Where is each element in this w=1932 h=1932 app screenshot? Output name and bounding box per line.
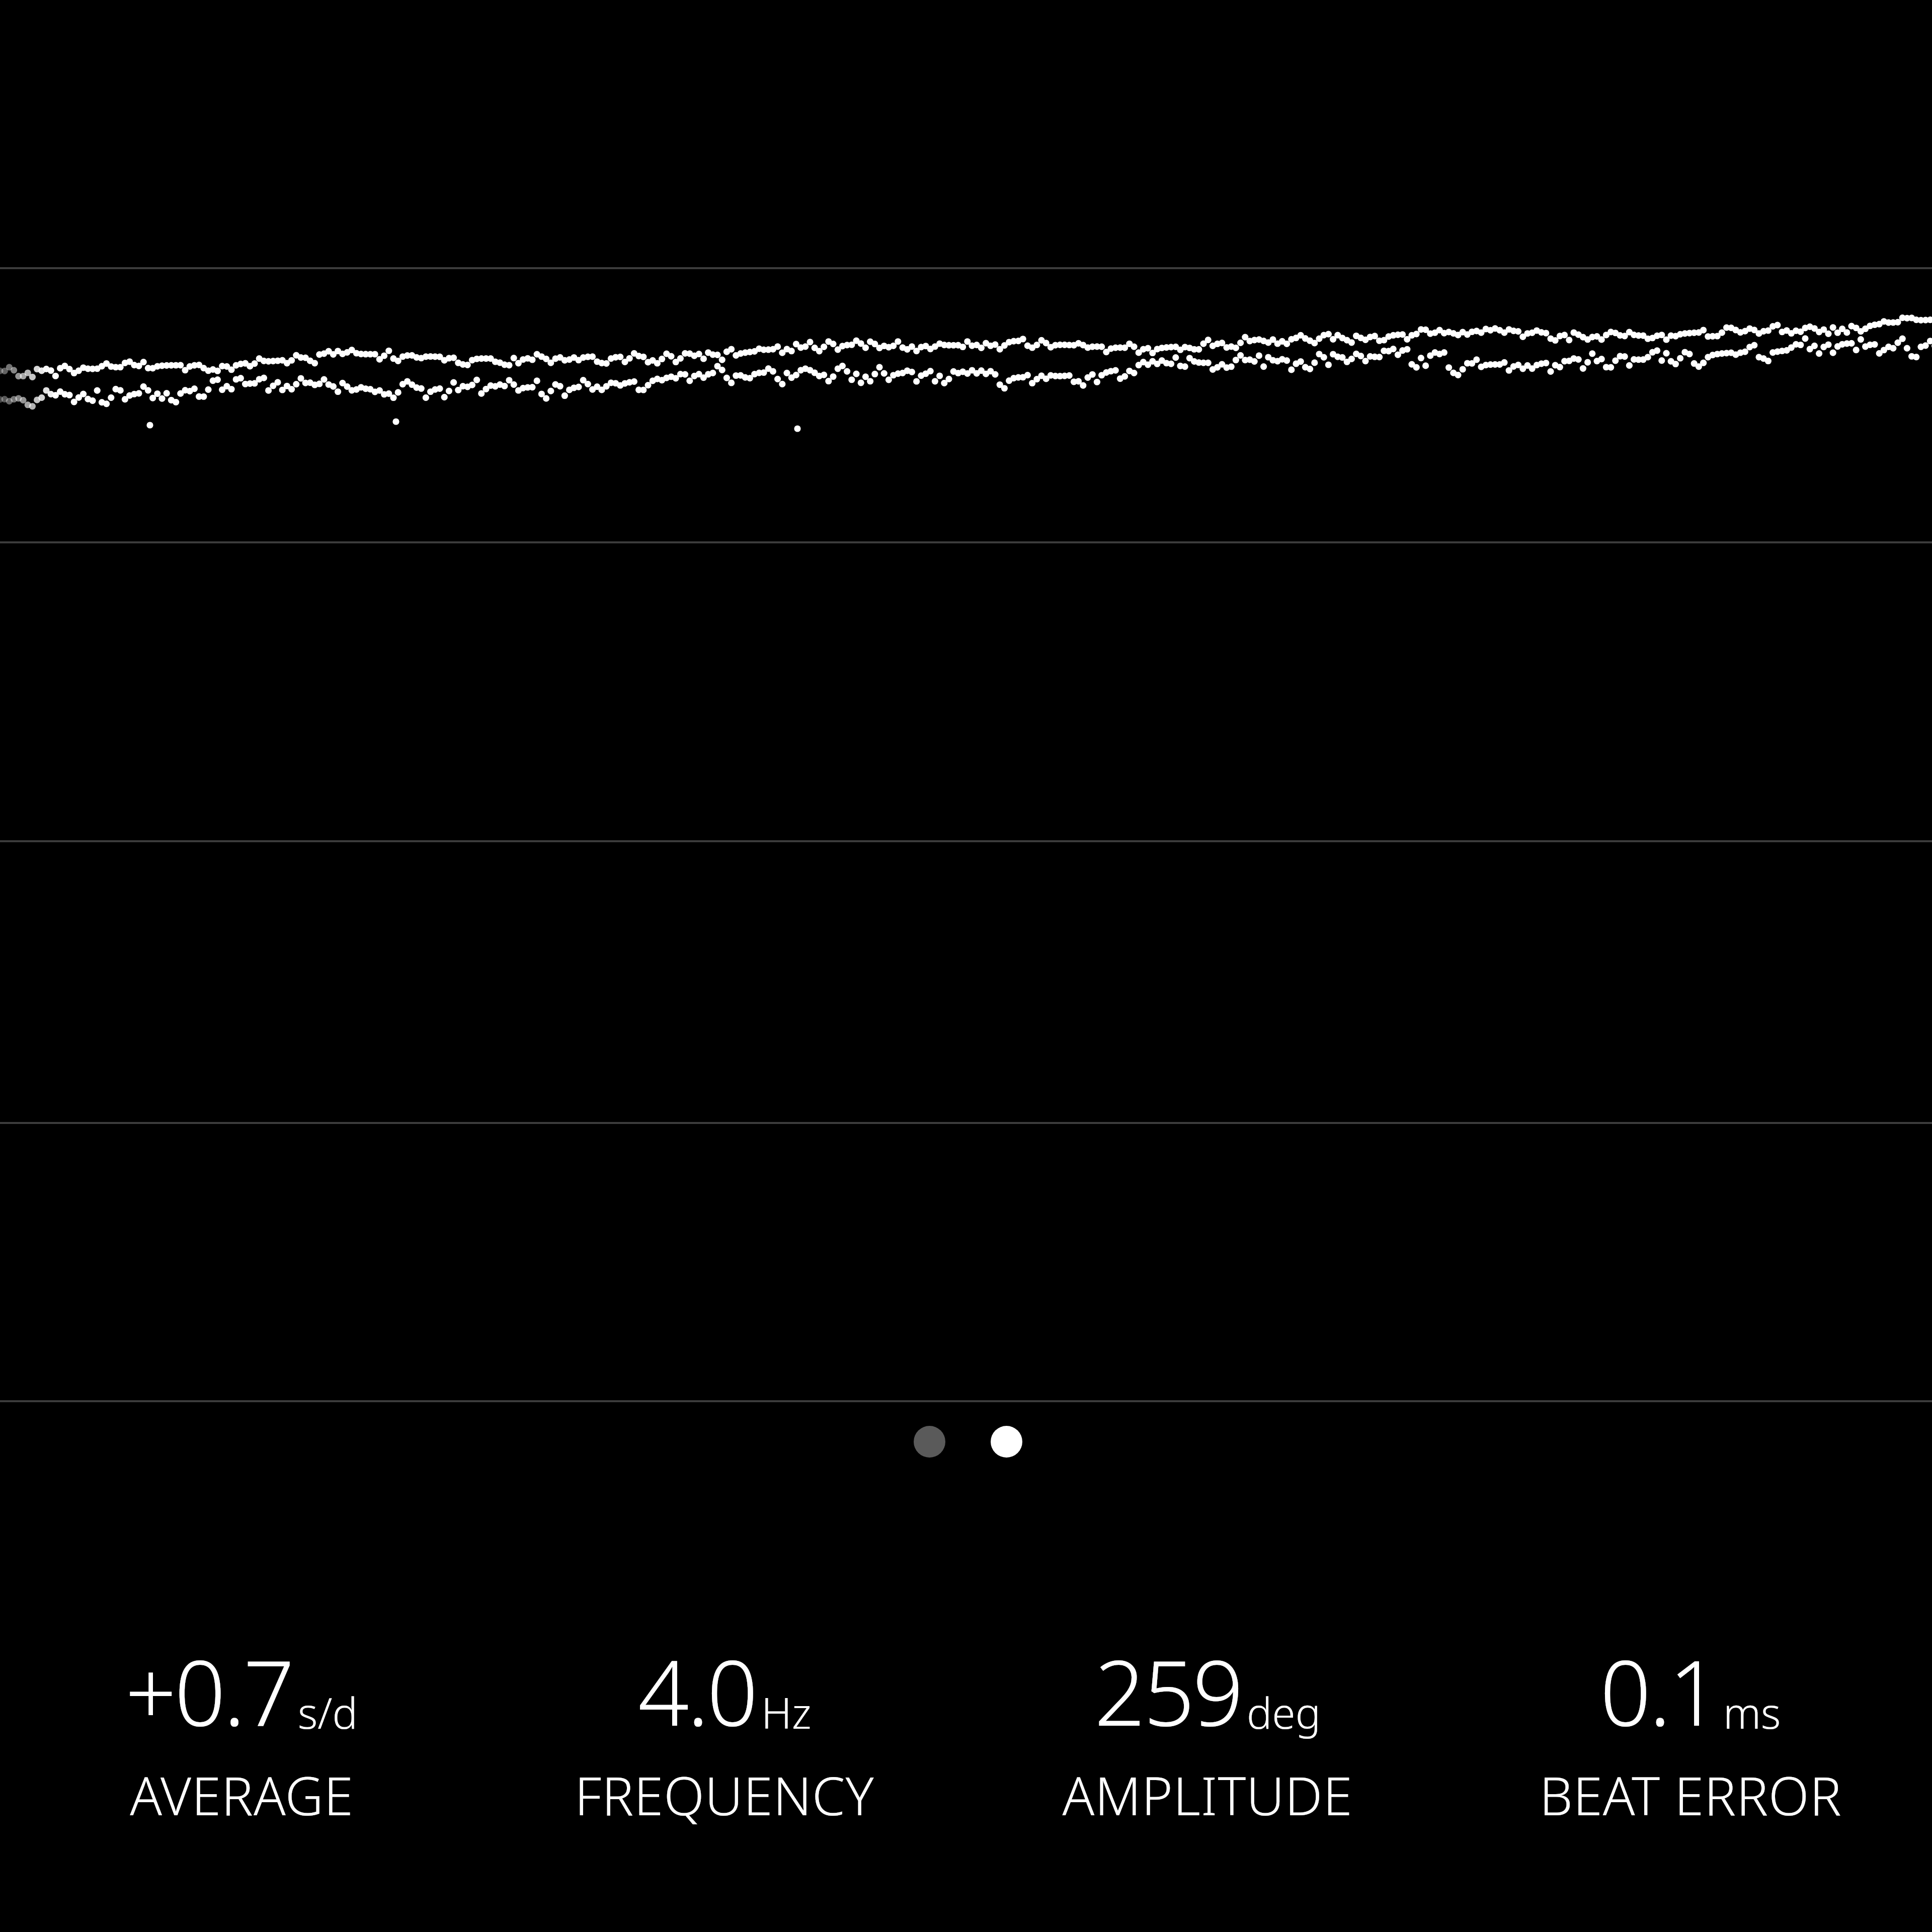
- staticText: deg: [1247, 1683, 1321, 1741]
- staticText: 259: [1094, 1630, 1242, 1752]
- staticText: FREQUENCY: [575, 1759, 874, 1831]
- other: Rate trace graph: [0, 0, 1932, 1404]
- button[interactable]: 0.1: [1449, 1630, 1932, 1831]
- staticText: ms: [1723, 1683, 1781, 1741]
- staticText: 0.1: [1600, 1630, 1718, 1752]
- staticText: 4.0: [638, 1630, 756, 1752]
- staticText: AMPLITUDE: [1062, 1759, 1353, 1831]
- button[interactable]: Page 1: [914, 1426, 945, 1458]
- staticText: AVERAGE: [130, 1759, 354, 1831]
- button[interactable]: Page 2, selected: [991, 1426, 1022, 1458]
- button[interactable]: 259: [966, 1630, 1449, 1831]
- staticText: +0.7: [125, 1630, 293, 1752]
- staticText: Hz: [761, 1683, 812, 1741]
- staticText: BEAT ERROR: [1539, 1759, 1842, 1831]
- button[interactable]: 4.0: [483, 1630, 966, 1831]
- staticText: s/d: [298, 1683, 358, 1741]
- button[interactable]: +0.7: [0, 1630, 483, 1831]
